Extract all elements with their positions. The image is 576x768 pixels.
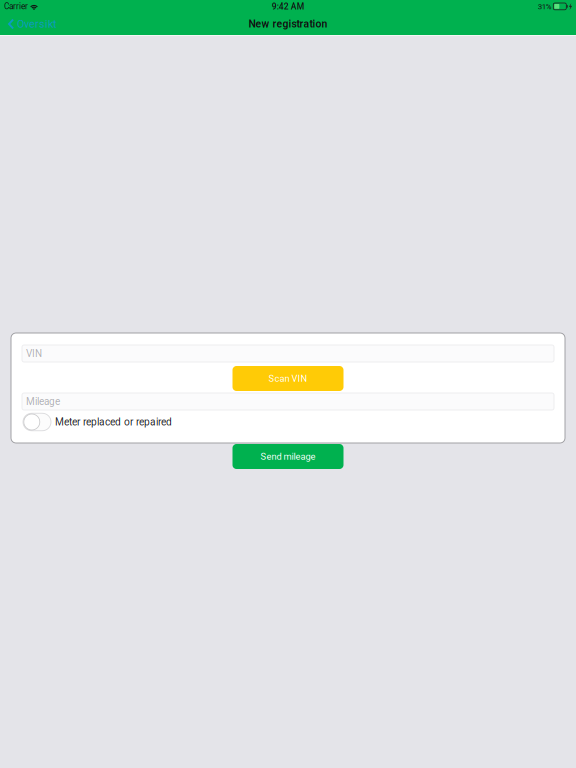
button[interactable]: Send mileage	[232, 444, 343, 469]
staticText: Meter replaced or repaired	[55, 416, 172, 428]
button[interactable]: Mileage	[22, 393, 554, 410]
staticText: 9:42 AM	[272, 1, 304, 11]
button[interactable]: Oversikt	[0, 15, 62, 33]
staticText: VIN	[26, 348, 42, 359]
button[interactable]: Scan VIN	[232, 366, 343, 391]
staticText: Oversikt	[17, 18, 56, 30]
staticText: 31%	[538, 2, 552, 11]
staticText: Send mileage	[260, 451, 315, 462]
staticText: Carrier	[4, 2, 28, 11]
staticText: New registration	[248, 18, 327, 30]
staticText: Mileage	[26, 396, 60, 407]
staticText: Scan VIN	[268, 373, 307, 384]
button[interactable]: VIN	[22, 345, 554, 362]
button[interactable]: Meter replaced or repaired	[22, 413, 51, 431]
